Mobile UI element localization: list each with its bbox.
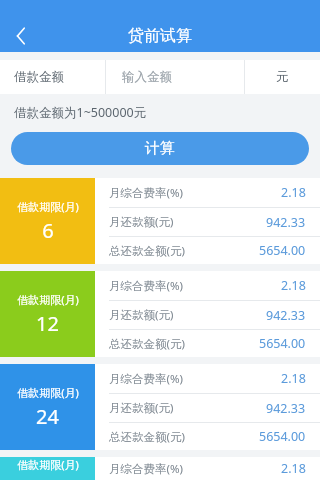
staticText: 借款金额 [14,69,64,85]
staticText: 12 [36,310,59,337]
staticText: 月还款额(元) [109,214,174,230]
button[interactable]: 计算 [11,132,309,165]
staticText: 5654.00 [259,242,306,259]
staticText: 贷前试算 [128,26,192,46]
staticText: 2.18 [281,460,306,477]
button[interactable]: 借款期限(月) [0,364,320,450]
staticText: 942.33 [266,400,306,417]
staticText: 总还款金额(元) [109,429,185,445]
staticText: 总还款金额(元) [109,243,185,259]
staticText: 2.18 [281,370,306,387]
staticText: 计算 [145,139,175,158]
staticText: 月综合费率(%) [109,371,183,387]
staticText: 总还款金额(元) [109,336,185,352]
staticText: 借款金额为1~500000元 [14,104,147,121]
staticText: 月综合费率(%) [109,278,183,294]
staticText: 借款期限(月) [17,292,79,307]
staticText: 月综合费率(%) [109,461,183,477]
staticText: 6 [42,217,54,244]
staticText: 2.18 [281,277,306,294]
staticText: 24 [36,403,59,430]
button[interactable]: 输入金额 [106,60,244,94]
staticText: 借款期限(月) [17,457,79,472]
button[interactable]: 借款期限(月) [0,457,320,480]
staticText: 借款期限(月) [17,385,79,400]
staticText: 月还款额(元) [109,307,174,323]
staticText: 942.33 [266,214,306,231]
staticText: 5654.00 [259,335,306,352]
staticText: 元 [276,69,289,85]
staticText: 2.18 [281,184,306,201]
staticText: 月综合费率(%) [109,185,183,201]
staticText: 月还款额(元) [109,400,174,416]
button[interactable]: Back [0,20,42,52]
staticText: 输入金额 [122,69,172,85]
staticText: 借款期限(月) [17,199,79,214]
staticText: 5654.00 [259,428,306,445]
button[interactable]: 借款期限(月) [0,178,320,264]
button[interactable]: 借款期限(月) [0,271,320,357]
staticText: 942.33 [266,307,306,324]
